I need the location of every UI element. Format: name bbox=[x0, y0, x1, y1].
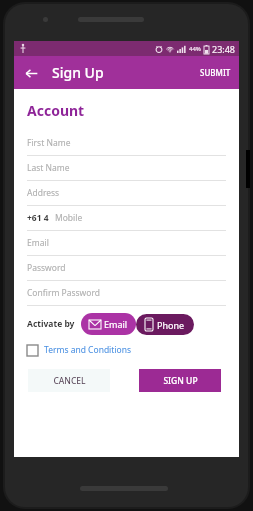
button[interactable]: Confirm Password bbox=[14, 281, 239, 306]
staticText: Email bbox=[27, 237, 49, 249]
button[interactable]: Address bbox=[14, 181, 239, 206]
button[interactable]: SIGN UP bbox=[139, 369, 221, 392]
staticText: 23:48 bbox=[212, 43, 236, 55]
button[interactable]: First Name bbox=[14, 131, 239, 156]
staticText: Confirm Password bbox=[27, 287, 100, 299]
staticText: Password bbox=[27, 262, 66, 274]
staticText: Phone bbox=[157, 319, 185, 331]
staticText: Sign Up bbox=[52, 63, 104, 82]
staticText: Email bbox=[104, 318, 128, 330]
button[interactable]: Terms and Conditions bbox=[27, 344, 132, 356]
staticText: 44% bbox=[189, 45, 201, 53]
staticText: Last Name bbox=[27, 162, 70, 174]
button[interactable]: Back bbox=[19, 61, 43, 85]
button[interactable]: CANCEL bbox=[28, 369, 110, 392]
button[interactable]: Email bbox=[14, 231, 239, 256]
staticText: Mobile bbox=[55, 212, 83, 224]
staticText: Activate by bbox=[27, 318, 75, 330]
staticText: First Name bbox=[27, 137, 71, 149]
button[interactable]: +61 4 bbox=[14, 206, 239, 231]
button[interactable]: Password bbox=[14, 256, 239, 281]
button[interactable]: Email bbox=[81, 313, 136, 335]
button[interactable]: Last Name bbox=[14, 156, 239, 181]
staticText: +61 4 bbox=[27, 212, 49, 224]
staticText: Terms and Conditions bbox=[44, 344, 132, 356]
staticText: Address bbox=[27, 187, 60, 199]
staticText: Account bbox=[27, 101, 85, 120]
staticText: CANCEL bbox=[53, 375, 86, 387]
staticText: SUBMIT bbox=[200, 67, 231, 78]
staticText: SIGN UP bbox=[163, 375, 198, 387]
button[interactable]: SUBMIT bbox=[192, 61, 239, 84]
button[interactable]: Phone bbox=[136, 314, 194, 335]
